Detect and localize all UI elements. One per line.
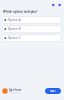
staticText: Option C (8, 36, 21, 40)
staticText: NEXT (49, 89, 56, 93)
staticText: Which option suits you? (3, 10, 37, 13)
button[interactable]: NEXT (45, 88, 61, 94)
button[interactable]: Option C (2, 34, 62, 42)
button[interactable]: Typeform (2, 88, 22, 94)
button[interactable]: Option A (2, 16, 62, 24)
button[interactable]: Menu (57, 3, 62, 7)
button[interactable]: Restart (51, 3, 56, 7)
staticText: Option A (8, 18, 21, 22)
button[interactable]: Option B (2, 25, 62, 33)
staticText: Typeform (9, 88, 22, 92)
staticText: Option B (8, 27, 21, 31)
